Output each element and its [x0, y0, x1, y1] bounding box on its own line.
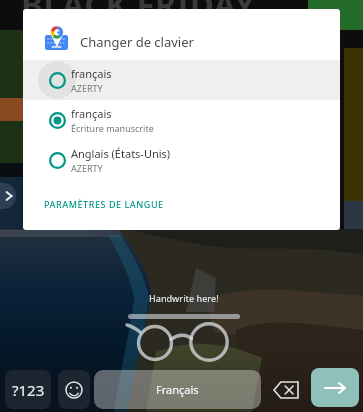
button[interactable]: ?123 [5, 370, 51, 409]
staticText: AZERTY [71, 82, 103, 94]
staticText: PARAMÈTRES DE LANGUE [44, 198, 164, 210]
button[interactable]: PARAMÈTRES DE LANGUE [37, 194, 171, 214]
button[interactable]: français [23, 100, 340, 140]
staticText: Écriture manuscrite [71, 122, 154, 134]
staticText: Handwrite here! [149, 292, 219, 304]
button[interactable]: Anglais (États-Unis) [23, 140, 340, 180]
staticText: français [71, 106, 112, 121]
button[interactable]: Enter [311, 368, 359, 407]
button[interactable]: français [23, 60, 340, 100]
staticText: Français [156, 382, 199, 397]
staticText: ?123 [12, 380, 45, 400]
staticText: BLACK FRIDAY [21, 0, 256, 27]
button[interactable]: Français [94, 370, 261, 409]
button[interactable]: Emoji [58, 370, 90, 409]
button[interactable]: Backspace [266, 370, 306, 409]
staticText: AZERTY [71, 162, 103, 174]
staticText: français [71, 66, 112, 81]
staticText: Anglais (États-Unis) [71, 146, 171, 161]
staticText: Changer de clavier [80, 33, 194, 51]
